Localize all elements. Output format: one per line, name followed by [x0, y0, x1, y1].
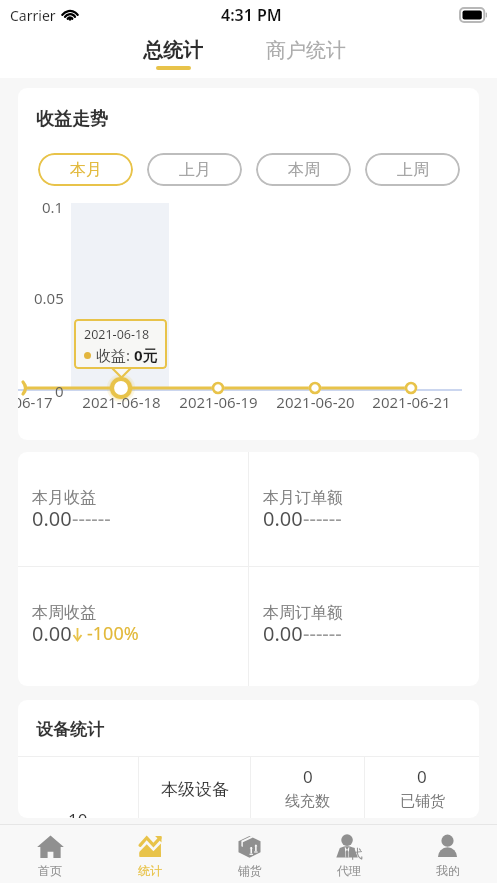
button[interactable]: 本月 [38, 153, 133, 186]
staticText: 设备统计 [36, 719, 104, 740]
button[interactable]: 代 [299, 825, 398, 883]
staticText: 0.1 [42, 197, 64, 217]
staticText: 2021-06-18 [82, 392, 161, 412]
staticText: -100% [87, 621, 139, 646]
button[interactable]: 商户统计 [262, 30, 350, 63]
staticText: 2021-06-21 [372, 392, 451, 412]
staticText: 收益: [96, 345, 134, 365]
button[interactable]: 我的 [398, 825, 497, 883]
button[interactable]: 本月收益 [18, 452, 248, 566]
staticText: 我的 [436, 863, 460, 878]
staticText: 0.00 [32, 620, 72, 647]
staticText: 本月收益 [32, 488, 96, 508]
staticText: 收益走势 [36, 108, 108, 131]
button[interactable]: 0 [365, 757, 479, 818]
staticText: 0 [55, 381, 64, 401]
staticText: 首页 [38, 863, 62, 878]
staticText: ------ [303, 620, 342, 647]
staticText: 0.05 [34, 288, 64, 308]
staticText: 0元 [134, 345, 158, 365]
button[interactable]: 0 [251, 757, 364, 818]
staticText: 0.00 [263, 620, 303, 647]
button[interactable]: 总统计 [139, 30, 207, 70]
button[interactable]: 上周 [365, 153, 460, 186]
button[interactable]: 本周 [256, 153, 351, 186]
staticText: 上月 [179, 160, 211, 180]
staticText: ------ [303, 505, 342, 532]
staticText: Carrier [10, 6, 56, 25]
staticText: 本周 [288, 160, 320, 180]
staticText: 本月订单额 [263, 488, 343, 508]
staticText: ------ [72, 505, 111, 532]
staticText: 已铺货 [400, 792, 445, 811]
button[interactable]: 本周订单额 [249, 567, 479, 686]
button[interactable]: 统计 [100, 825, 200, 883]
button[interactable]: 铺货 [200, 825, 299, 883]
staticText: 2021-06-20 [276, 392, 355, 412]
staticText: 本周收益 [32, 603, 96, 623]
staticText: 0 [303, 765, 313, 788]
button[interactable]: 本月订单额 [249, 452, 479, 566]
staticText: 代理 [337, 863, 361, 878]
staticText: 0.00 [263, 505, 303, 532]
button[interactable]: 本周收益 [18, 567, 248, 686]
staticText: 本级设备 [161, 779, 229, 800]
staticText: 商户统计 [266, 38, 346, 63]
staticText: 4:31 PM [221, 4, 282, 26]
staticText: 铺货 [238, 863, 262, 878]
staticText: 上周 [397, 160, 429, 180]
staticText: 本月 [70, 160, 102, 180]
staticText: 本周订单额 [263, 603, 343, 623]
button[interactable]: 10 [18, 757, 138, 818]
staticText: 2021-06-18 [84, 326, 150, 343]
staticText: 统计 [138, 863, 162, 878]
staticText: 06-17 [18, 392, 53, 412]
button[interactable]: 本级设备 [139, 757, 250, 818]
staticText: 2021-06-19 [179, 392, 258, 412]
staticText: 0.00 [32, 505, 72, 532]
staticText: 0 [417, 765, 427, 788]
staticText: 10 [68, 808, 88, 818]
staticText: 总统计 [143, 38, 203, 63]
staticText: 代 [350, 845, 363, 861]
staticText: 线充数 [285, 792, 330, 811]
button[interactable]: 首页 [0, 825, 100, 883]
button[interactable]: 上月 [147, 153, 242, 186]
